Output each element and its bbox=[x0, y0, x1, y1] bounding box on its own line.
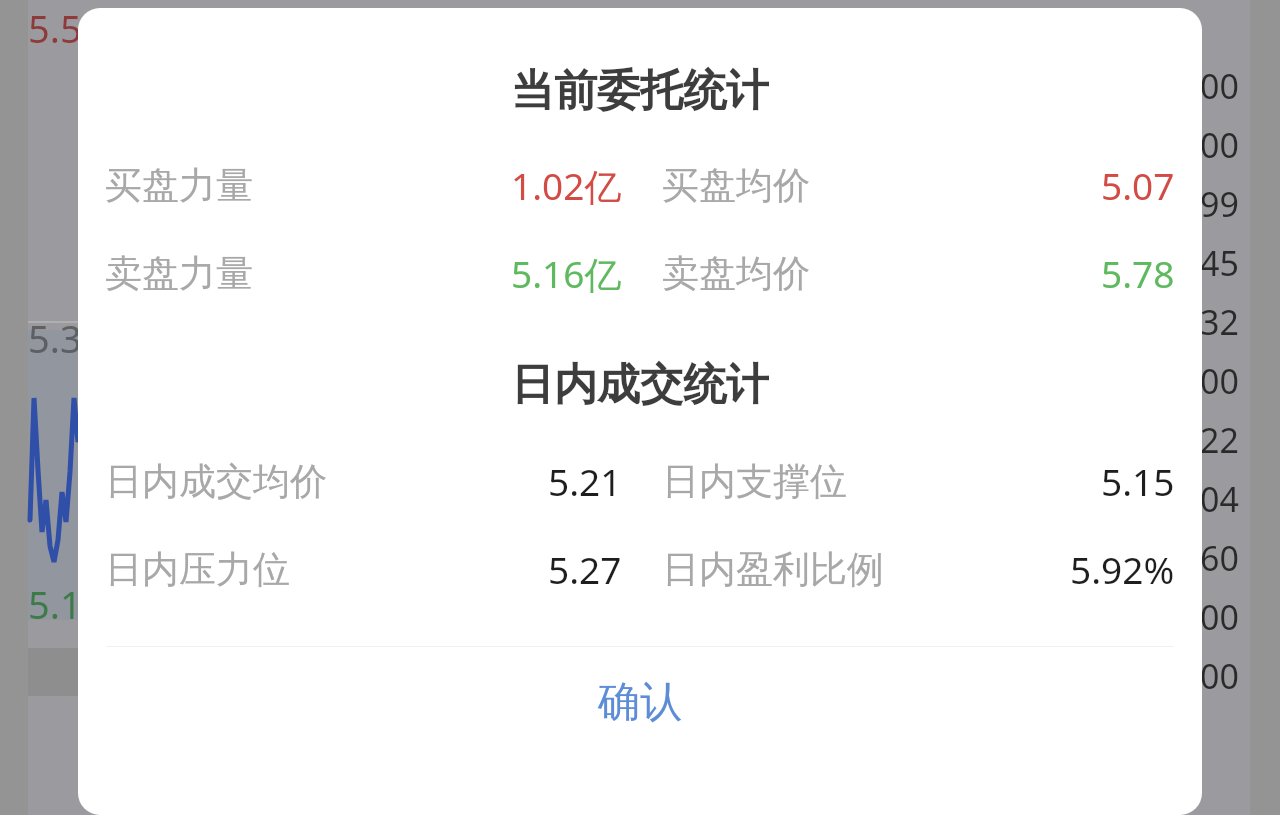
staticText: 5.92% bbox=[1070, 544, 1175, 594]
button[interactable]: 确认 bbox=[78, 647, 1202, 757]
staticText: 00 bbox=[1200, 63, 1239, 109]
staticText: 卖盘均价 bbox=[662, 250, 810, 297]
staticText: 00 bbox=[1200, 122, 1239, 168]
staticText: 日内成交统计 bbox=[511, 358, 769, 410]
staticText: 5.1 bbox=[28, 578, 82, 630]
staticText: 日内成交均价 bbox=[105, 458, 327, 505]
staticText: 买盘力量 bbox=[105, 162, 253, 209]
staticText: 00 bbox=[1200, 594, 1239, 640]
staticText: 04 bbox=[1200, 476, 1239, 522]
staticText: 99 bbox=[1200, 181, 1239, 227]
staticText: 当前委托统计 bbox=[511, 64, 769, 116]
staticText: 45 bbox=[1200, 240, 1239, 286]
staticText: 日内支撑位 bbox=[662, 458, 847, 505]
staticText: 5.27 bbox=[548, 544, 622, 594]
staticText: 买盘均价 bbox=[662, 162, 810, 209]
staticText: 5.5 bbox=[28, 2, 82, 54]
staticText: 00 bbox=[1200, 653, 1239, 699]
staticText: 日内压力位 bbox=[105, 546, 290, 593]
staticText: 日内盈利比例 bbox=[662, 546, 884, 593]
staticText: 32 bbox=[1200, 299, 1239, 345]
staticText: 卖盘力量 bbox=[105, 250, 253, 297]
staticText: 60 bbox=[1200, 535, 1239, 581]
staticText: 5.21 bbox=[548, 456, 622, 506]
staticText: 确认 bbox=[598, 676, 682, 729]
staticText: 5.16亿 bbox=[511, 248, 622, 298]
staticText: 22 bbox=[1200, 417, 1239, 463]
staticText: 5.3 bbox=[28, 312, 82, 364]
staticText: 1.02亿 bbox=[511, 160, 622, 210]
staticText: 5.07 bbox=[1101, 160, 1175, 210]
staticText: 5.15 bbox=[1101, 456, 1175, 506]
staticText: 00 bbox=[1200, 358, 1239, 404]
staticText: 5.78 bbox=[1101, 248, 1175, 298]
